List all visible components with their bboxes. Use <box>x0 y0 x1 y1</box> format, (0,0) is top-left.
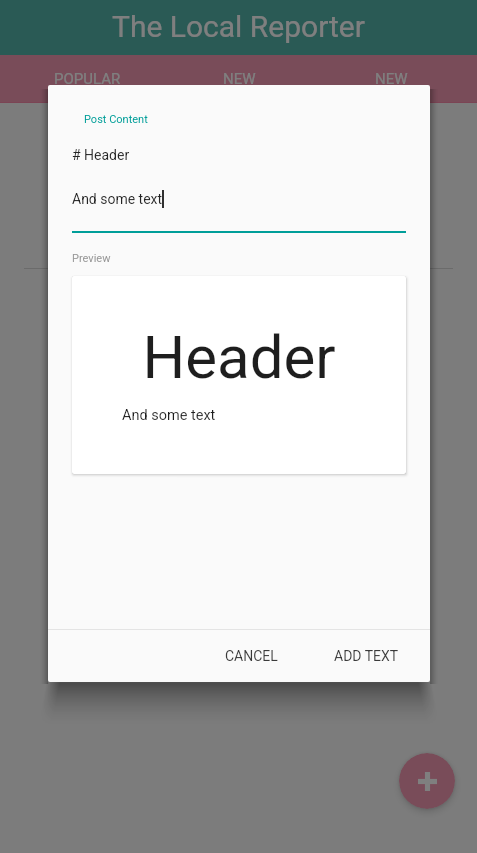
button[interactable]: ADD TEXT <box>326 638 407 674</box>
button[interactable]: CANCEL <box>217 638 286 674</box>
staticText: The Local Reporter <box>112 9 365 44</box>
staticText: ADD TEXT <box>334 648 399 664</box>
staticText: NEW <box>223 70 256 88</box>
staticText: Header <box>72 322 406 392</box>
staticText: # Header <box>72 147 130 163</box>
button[interactable]: POPULAR <box>11 55 163 103</box>
button[interactable]: NEW <box>315 55 467 103</box>
button[interactable]: NEW <box>163 55 315 103</box>
staticText: CANCEL <box>225 648 278 664</box>
staticText: Preview <box>72 252 111 265</box>
staticText: NEW <box>375 70 408 88</box>
button[interactable]: New post <box>399 753 455 809</box>
staticText: And some text <box>122 407 216 424</box>
staticText: And some text <box>72 191 163 207</box>
staticText: POPULAR <box>54 70 121 88</box>
staticText: Post Content <box>84 113 148 126</box>
